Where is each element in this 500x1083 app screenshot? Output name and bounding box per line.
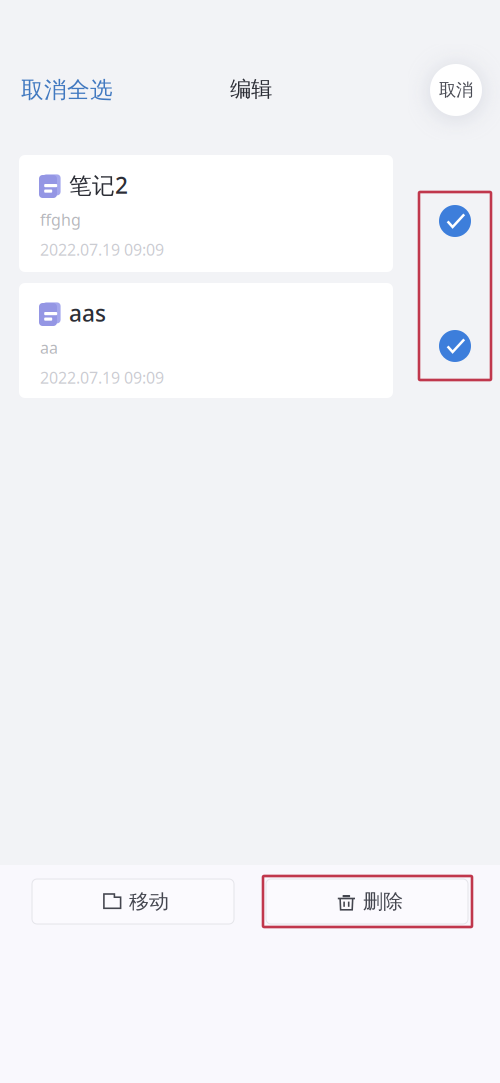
staticText: 编辑 [230, 76, 272, 102]
staticText: 2022.07.19 09:09 [40, 239, 164, 260]
staticText: 笔记2 [69, 170, 128, 200]
button[interactable]: 删除 [266, 879, 468, 924]
staticText: 取消全选 [21, 76, 113, 104]
staticText: 取消 [439, 79, 473, 101]
staticText: 删除 [363, 889, 403, 914]
staticText: aas [69, 298, 106, 328]
button[interactable]: Deselect 笔记2 [439, 205, 471, 237]
staticText: aa [40, 337, 58, 358]
button[interactable]: 取消全选 [12, 67, 122, 113]
staticText: 移动 [129, 889, 169, 914]
staticText: 2022.07.19 09:09 [40, 367, 164, 388]
button[interactable]: 移动 [32, 879, 234, 924]
staticText: ffghg [40, 209, 81, 230]
button[interactable]: aas [19, 283, 393, 398]
button[interactable]: Deselect aas [439, 330, 471, 362]
button[interactable]: 笔记2 [19, 155, 393, 272]
button[interactable]: 取消 [430, 64, 482, 116]
